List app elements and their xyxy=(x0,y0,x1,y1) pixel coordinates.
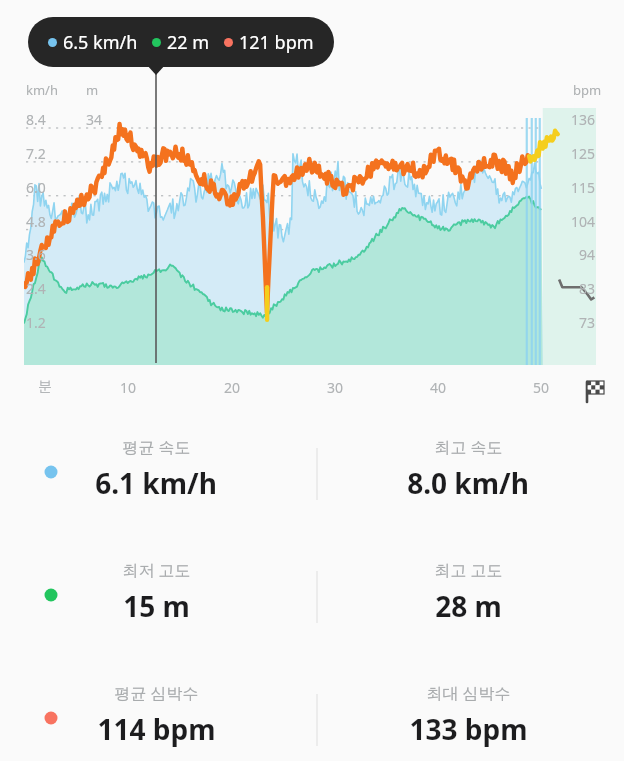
staticText: 114 bpm xyxy=(97,710,216,748)
staticText: 분 xyxy=(38,378,52,396)
staticText: 최대 심박수 xyxy=(426,682,511,704)
staticText: 115 xyxy=(571,178,596,197)
staticText: 10 xyxy=(120,378,137,397)
staticText: m xyxy=(86,81,99,99)
staticText: km/h xyxy=(26,81,58,99)
staticText: 50 xyxy=(533,378,550,397)
staticText: 20 xyxy=(224,378,241,397)
staticText: 125 xyxy=(571,144,596,163)
staticText: 73 xyxy=(579,313,596,332)
staticText: 7.2 xyxy=(26,144,46,163)
staticText: 104 xyxy=(571,212,596,231)
button[interactable]: 평균 심박수 xyxy=(0,676,624,759)
staticText: 1.2 xyxy=(26,313,46,332)
button[interactable]: 최저 고도 xyxy=(0,553,624,636)
staticText: 평균 속도 xyxy=(122,436,191,458)
staticText: 34 xyxy=(86,110,103,129)
staticText: 최고 고도 xyxy=(434,559,503,581)
staticText: 8.4 xyxy=(26,110,46,129)
staticText: 4.8 xyxy=(26,212,46,231)
staticText: 8.0 km/h xyxy=(407,464,529,502)
staticText: 6.5 km/h xyxy=(63,30,138,55)
staticText: 최저 고도 xyxy=(122,559,191,581)
staticText: 28 m xyxy=(435,587,502,625)
staticText: 30 xyxy=(327,378,344,397)
staticText: 15 m xyxy=(123,587,190,625)
staticText: 6.0 xyxy=(26,178,46,197)
staticText: 40 xyxy=(430,378,447,397)
button[interactable]: 평균 속도 xyxy=(0,430,624,513)
staticText: 136 xyxy=(571,110,596,129)
staticText: 3.6 xyxy=(26,245,46,264)
staticText: 83 xyxy=(579,279,596,298)
staticText: 평균 심박수 xyxy=(114,682,199,704)
staticText: 2.4 xyxy=(26,279,46,298)
staticText: 22 m xyxy=(167,30,210,55)
staticText: bpm xyxy=(573,81,602,99)
staticText: 121 bpm xyxy=(239,30,314,55)
button[interactable]: Finish xyxy=(580,376,608,404)
staticText: 133 bpm xyxy=(409,710,528,748)
button[interactable]: 6.5 km/h xyxy=(28,17,334,67)
staticText: 6.1 km/h xyxy=(95,464,217,502)
staticText: 94 xyxy=(579,245,596,264)
staticText: 최고 속도 xyxy=(434,436,503,458)
